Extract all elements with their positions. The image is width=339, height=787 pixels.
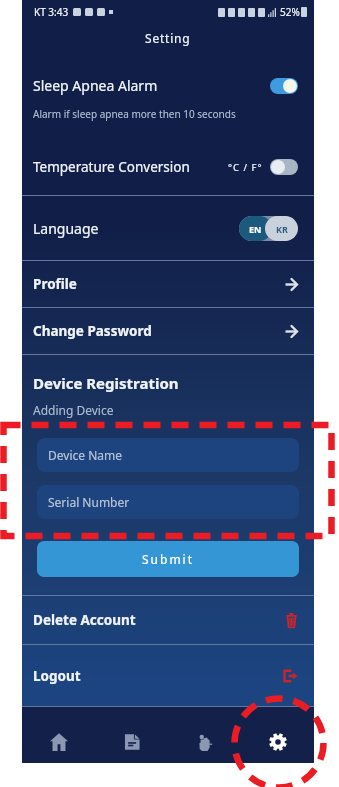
staticText: KT 3:43 <box>34 5 69 19</box>
staticText: Submit <box>142 551 195 567</box>
button[interactable]: Change Password <box>22 308 314 354</box>
staticText: 52% <box>280 5 300 19</box>
button[interactable]: Toggle off <box>270 159 298 175</box>
button[interactable]: Profile <box>22 261 314 307</box>
staticText: Temperature Conversion <box>33 158 190 176</box>
button[interactable]: Device Name <box>37 438 299 472</box>
staticText: Language <box>33 219 99 238</box>
staticText: KR <box>276 223 288 235</box>
staticText: Adding Device <box>33 402 114 418</box>
button[interactable]: Reports <box>95 707 168 763</box>
staticText: EN <box>249 223 262 235</box>
staticText: Profile <box>33 275 77 293</box>
other: Delete account <box>285 612 298 629</box>
button[interactable]: Measure <box>168 707 241 763</box>
staticText: Delete Account <box>33 611 136 629</box>
button[interactable]: Sleep Apnea Alarm <box>22 55 314 130</box>
staticText: Device Registration <box>33 373 179 393</box>
button[interactable]: Submit <box>37 541 299 577</box>
staticText: Device Name <box>48 447 122 463</box>
staticText: Logout <box>33 667 81 685</box>
staticText: Serial Number <box>48 494 130 510</box>
button[interactable]: Delete Account <box>22 596 314 644</box>
staticText: Change Password <box>33 322 152 340</box>
staticText: °C / F° <box>228 161 263 174</box>
button[interactable]: Temperature Conversion <box>22 130 314 195</box>
button[interactable]: EN <box>239 216 298 241</box>
staticText: Setting <box>145 30 191 46</box>
staticText: Sleep Apnea Alarm <box>33 76 158 95</box>
button[interactable]: Toggle on <box>270 78 298 94</box>
other: Logout <box>283 669 298 683</box>
button[interactable]: Language <box>22 196 314 260</box>
button[interactable]: Home <box>22 707 95 763</box>
staticText: Alarm if sleep apnea more then 10 second… <box>33 107 236 121</box>
button[interactable]: Settings <box>241 707 314 763</box>
button[interactable]: Logout <box>22 645 314 706</box>
button[interactable]: Serial Number <box>37 485 299 519</box>
